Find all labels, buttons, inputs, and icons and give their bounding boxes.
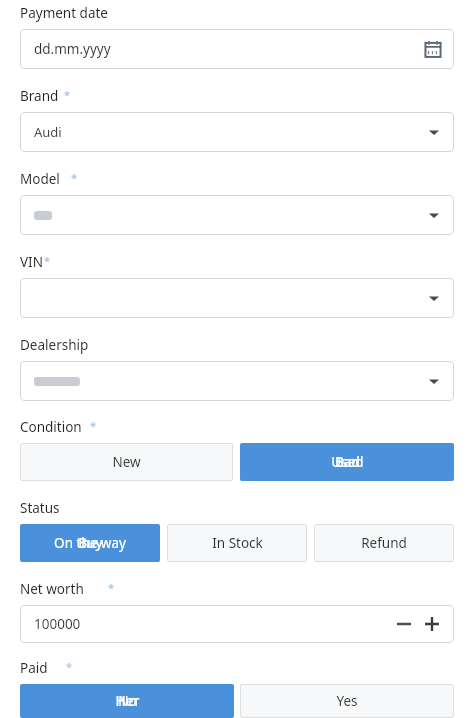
staticText: * <box>90 418 97 433</box>
staticText: Нет <box>115 692 140 710</box>
staticText: No <box>118 692 137 710</box>
staticText: Brand <box>20 87 59 105</box>
staticText: Refund <box>361 534 407 552</box>
button[interactable]: On the way <box>20 524 160 562</box>
button[interactable]: Yes <box>240 684 454 718</box>
staticText: New <box>112 453 141 471</box>
button[interactable]: Net worth <box>20 605 454 643</box>
staticText: 100000 <box>34 615 81 633</box>
staticText: Payment date <box>20 4 108 22</box>
staticText: Condition <box>20 418 82 436</box>
staticText: Status <box>20 499 60 517</box>
staticText: * <box>64 87 71 102</box>
button[interactable]: Model <box>20 195 454 235</box>
button[interactable]: Brand <box>20 112 454 152</box>
button[interactable]: Refund <box>314 524 454 562</box>
staticText: Yes <box>336 692 358 710</box>
button[interactable]: Decrease <box>394 614 414 634</box>
staticText: On the way <box>54 534 126 552</box>
button[interactable]: Open calendar <box>424 40 442 58</box>
staticText: Paid <box>20 659 48 677</box>
staticText: VIN <box>20 253 43 271</box>
staticText: dd.mm.yyyy <box>34 40 111 58</box>
staticText: Audi <box>34 123 62 141</box>
staticText: In Stock <box>212 534 263 552</box>
button[interactable]: Increase <box>422 614 442 634</box>
staticText: Used <box>331 453 364 471</box>
button[interactable]: Payment date <box>20 29 454 69</box>
staticText: * <box>66 659 73 674</box>
staticText: Model <box>20 170 60 188</box>
staticText: Dealership <box>20 336 89 354</box>
staticText: Buy <box>78 534 103 552</box>
button[interactable]: Used <box>240 443 454 481</box>
staticText: * <box>71 170 78 185</box>
button[interactable]: Dealership <box>20 361 454 401</box>
button[interactable]: No <box>20 684 234 718</box>
button[interactable]: New <box>20 443 233 481</box>
staticText: Net worth <box>20 580 84 598</box>
staticText: * <box>108 580 115 595</box>
staticText: Bad <box>335 453 360 471</box>
staticText: * <box>44 253 51 268</box>
button[interactable]: VIN <box>20 278 454 318</box>
button[interactable]: In Stock <box>167 524 307 562</box>
